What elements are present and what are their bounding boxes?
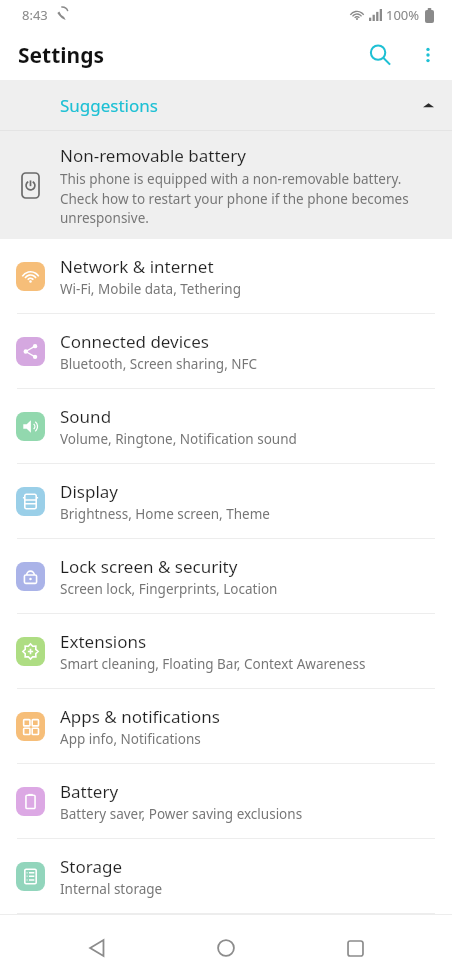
button[interactable]: Lock screen & security <box>0 539 452 613</box>
staticText: Bluetooth, Screen sharing, NFC <box>60 355 258 373</box>
staticText: Network & internet <box>60 255 214 278</box>
staticText: Lock screen & security <box>60 555 238 578</box>
button[interactable]: More options <box>404 31 452 79</box>
button[interactable]: Recent apps <box>323 916 387 980</box>
staticText: Battery <box>60 780 119 803</box>
staticText: 8:43 <box>22 6 48 24</box>
staticText: Battery saver, Power saving exclusions <box>60 805 303 823</box>
staticText: Settings <box>18 41 105 70</box>
staticText: Extensions <box>60 630 147 653</box>
button[interactable]: Search <box>356 31 404 79</box>
staticText: Non-removable battery <box>60 144 246 167</box>
staticText: Display <box>60 480 118 503</box>
button[interactable]: Storage <box>0 839 452 913</box>
button[interactable]: Sound <box>0 389 452 463</box>
staticText: Sound <box>60 405 112 428</box>
staticText: Internal storage <box>60 880 163 898</box>
button[interactable]: Non-removable battery <box>0 131 452 239</box>
staticText: Smart cleaning, Floating Bar, Context Aw… <box>60 655 366 673</box>
button[interactable]: Display <box>0 464 452 538</box>
staticText: Wi-Fi, Mobile data, Tethering <box>60 280 241 298</box>
staticText: App info, Notifications <box>60 730 201 748</box>
button[interactable]: Extensions <box>0 614 452 688</box>
staticText: Brightness, Home screen, Theme <box>60 505 270 523</box>
button[interactable]: Apps & notifications <box>0 689 452 763</box>
button[interactable]: Connected devices <box>0 314 452 388</box>
staticText: Connected devices <box>60 330 210 353</box>
button[interactable]: Network & internet <box>0 239 452 313</box>
staticText: 100% <box>386 6 420 24</box>
staticText: Screen lock, Fingerprints, Location <box>60 580 278 598</box>
staticText: Suggestions <box>60 94 158 117</box>
button[interactable]: Battery <box>0 764 452 838</box>
button[interactable]: Home <box>194 916 258 980</box>
staticText: Volume, Ringtone, Notification sound <box>60 430 297 448</box>
staticText: Storage <box>60 855 123 878</box>
button[interactable]: Back <box>65 916 129 980</box>
button[interactable]: Suggestions <box>0 80 452 130</box>
staticText: This phone is equipped with a non-remova… <box>60 170 434 227</box>
staticText: Apps & notifications <box>60 705 220 728</box>
